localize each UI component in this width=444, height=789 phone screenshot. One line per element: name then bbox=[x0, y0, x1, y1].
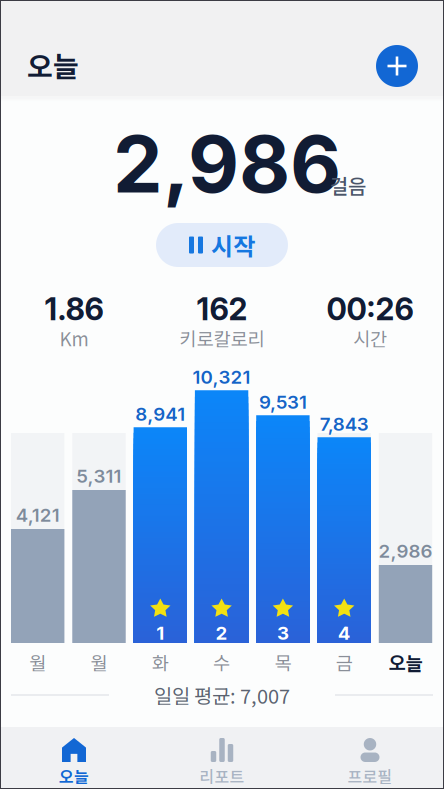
staticText: 화 bbox=[152, 648, 169, 675]
staticText: Km bbox=[59, 324, 88, 351]
staticText: 9,531 bbox=[259, 391, 307, 413]
staticText: 2,986 bbox=[378, 540, 432, 562]
staticText: 프로필 bbox=[347, 764, 392, 788]
staticText: 오늘 bbox=[59, 764, 89, 788]
staticText: 키로칼로리 bbox=[179, 324, 264, 351]
staticText: 2 bbox=[216, 622, 228, 644]
staticText: 8,941 bbox=[135, 403, 185, 425]
staticText: 시간 bbox=[353, 324, 387, 351]
staticText: 리포트 bbox=[199, 764, 244, 788]
staticText: 오늘 bbox=[388, 648, 422, 675]
staticText: 162 bbox=[196, 290, 247, 327]
button[interactable]: 프로필 bbox=[296, 727, 444, 789]
staticText: 걸음 bbox=[330, 170, 366, 199]
staticText: 금 bbox=[336, 648, 353, 675]
button[interactable]: 시작 bbox=[156, 223, 288, 267]
staticText: 2,986 bbox=[113, 116, 341, 212]
staticText: 1.86 bbox=[44, 290, 103, 327]
staticText: 4 bbox=[338, 622, 351, 644]
staticText: 월 bbox=[90, 648, 107, 675]
button[interactable]: 리포트 bbox=[148, 727, 296, 789]
button[interactable]: Add bbox=[376, 45, 418, 87]
button[interactable]: 오늘 bbox=[0, 727, 148, 789]
staticText: 오늘 bbox=[27, 45, 79, 85]
staticText: 3 bbox=[277, 622, 289, 644]
staticText: 1 bbox=[156, 622, 164, 644]
staticText: 목 bbox=[274, 648, 291, 675]
staticText: 시작 bbox=[211, 228, 255, 262]
staticText: 일일 평균: 7,007 bbox=[154, 680, 290, 709]
staticText: 7,843 bbox=[320, 413, 369, 435]
staticText: 00:26 bbox=[326, 290, 413, 327]
staticText: 4,121 bbox=[16, 504, 60, 526]
staticText: 수 bbox=[213, 648, 230, 675]
staticText: 5,311 bbox=[76, 465, 121, 487]
staticText: 월 bbox=[29, 648, 46, 675]
staticText: 10,321 bbox=[193, 366, 251, 388]
